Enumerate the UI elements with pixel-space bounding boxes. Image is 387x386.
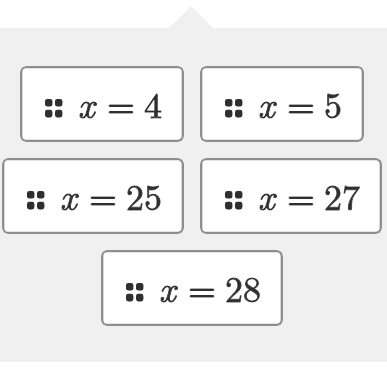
staticText: x bbox=[159, 261, 176, 312]
button[interactable]: Reorder answer bbox=[101, 250, 283, 326]
other: Reorder answer bbox=[126, 283, 144, 302]
staticText: x bbox=[60, 169, 77, 220]
staticText: 28 bbox=[225, 261, 261, 312]
staticText: = bbox=[287, 77, 316, 128]
staticText: x bbox=[78, 77, 95, 128]
staticText: x bbox=[258, 77, 275, 128]
staticText: = bbox=[107, 77, 136, 128]
staticText: = bbox=[287, 169, 316, 220]
staticText: 27 bbox=[324, 169, 360, 220]
staticText: 4 bbox=[144, 77, 162, 128]
button[interactable]: Reorder answer bbox=[20, 66, 184, 142]
staticText: = bbox=[89, 169, 118, 220]
staticText: x bbox=[258, 169, 275, 220]
button[interactable]: Reorder answer bbox=[2, 158, 184, 234]
staticText: x bbox=[159, 261, 176, 312]
staticText: 25 bbox=[126, 169, 162, 220]
staticText: = bbox=[188, 261, 217, 312]
staticText: x bbox=[60, 169, 77, 220]
staticText: = bbox=[287, 169, 316, 220]
staticText: = bbox=[107, 77, 136, 128]
staticText: x bbox=[78, 77, 95, 128]
staticText: = bbox=[188, 261, 217, 312]
staticText: x bbox=[258, 169, 275, 220]
staticText: 28 bbox=[225, 261, 261, 312]
button[interactable]: Reorder answer bbox=[200, 158, 382, 234]
other: Reorder answer bbox=[27, 191, 45, 210]
staticText: 5 bbox=[324, 77, 342, 128]
other: Reorder answer bbox=[225, 191, 243, 210]
button[interactable]: Reorder answer bbox=[200, 66, 364, 142]
staticText: 4 bbox=[144, 77, 162, 128]
staticText: x bbox=[258, 77, 275, 128]
other: Reorder answer bbox=[225, 99, 243, 118]
staticText: 25 bbox=[126, 169, 162, 220]
staticText: 5 bbox=[324, 77, 342, 128]
other: Reorder answer bbox=[45, 99, 63, 118]
staticText: = bbox=[89, 169, 118, 220]
staticText: 27 bbox=[324, 169, 360, 220]
staticText: = bbox=[287, 77, 316, 128]
